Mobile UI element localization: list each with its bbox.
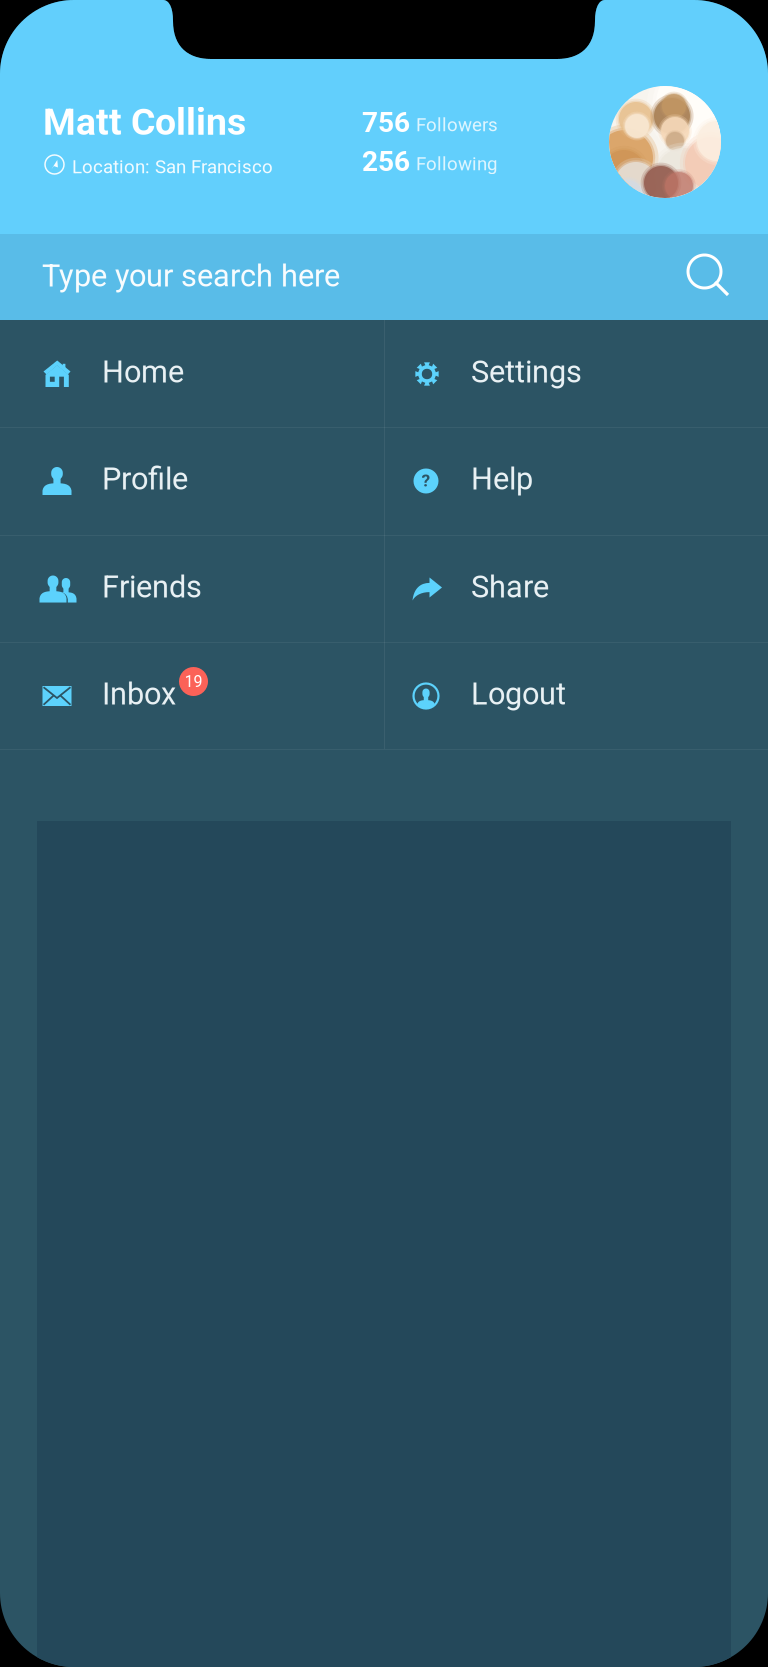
- staticText: Logout: [471, 676, 566, 712]
- staticText: 19: [184, 672, 202, 691]
- staticText: 256: [362, 145, 410, 178]
- button[interactable]: Home: [0, 320, 384, 427]
- staticText: Settings: [471, 354, 582, 390]
- staticText: Inbox: [102, 676, 176, 712]
- staticText: Help: [471, 461, 533, 497]
- staticText: Location: San Francisco: [72, 156, 273, 178]
- button[interactable]: Logout: [384, 642, 768, 749]
- button[interactable]: Profile: [0, 427, 384, 534]
- staticText: Following: [416, 153, 497, 175]
- staticText: ?: [421, 470, 430, 491]
- staticText: Share: [471, 569, 549, 605]
- button[interactable]: Type your search here: [0, 234, 768, 320]
- staticText: 756: [362, 106, 410, 139]
- staticText: Profile: [102, 461, 188, 497]
- button[interactable]: Friends: [0, 535, 384, 642]
- staticText: Followers: [416, 114, 498, 136]
- button[interactable]: Inbox: [0, 642, 384, 749]
- button[interactable]: ?: [384, 427, 768, 534]
- staticText: Type your search here: [42, 258, 340, 294]
- button[interactable]: Share: [384, 535, 768, 642]
- staticText: Friends: [102, 569, 202, 605]
- button[interactable]: Settings: [384, 320, 768, 427]
- staticText: Home: [102, 354, 184, 390]
- staticText: Matt Collins: [43, 100, 246, 144]
